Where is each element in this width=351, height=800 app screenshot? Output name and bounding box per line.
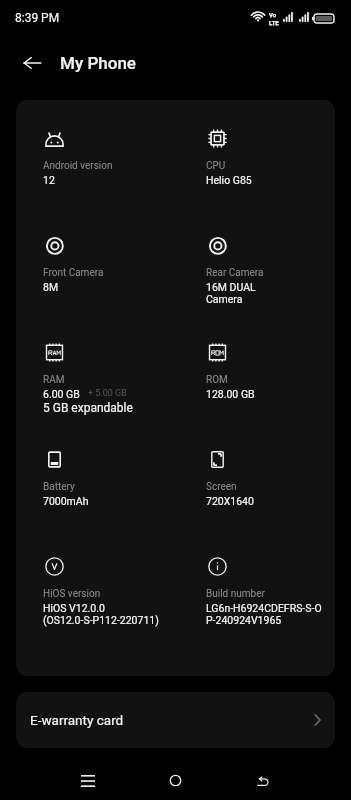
button[interactable]: Battery <box>43 450 206 507</box>
staticText: + 5.00 GB <box>88 388 127 399</box>
button[interactable]: CPU <box>206 129 333 186</box>
staticText: Helio G85 <box>206 174 252 186</box>
button[interactable]: Recent apps <box>44 760 131 800</box>
staticText: LTE <box>269 19 279 26</box>
button[interactable]: Build number <box>206 557 333 626</box>
staticText: My Phone <box>60 53 136 73</box>
staticText: 16M DUAL Camera <box>206 281 256 305</box>
staticText: E-warranty card <box>30 712 124 728</box>
button[interactable]: Home <box>131 760 219 800</box>
staticText: CPU <box>206 160 226 172</box>
staticText: 128.00 GB <box>206 388 255 400</box>
staticText: Battery <box>43 481 75 493</box>
staticText: Front Camera <box>43 267 104 279</box>
button[interactable]: Android version <box>43 129 206 186</box>
staticText: Build number <box>206 588 265 600</box>
button[interactable]: RAM <box>43 343 206 415</box>
button[interactable]: Front Camera <box>43 236 206 293</box>
button[interactable]: HiOS version <box>43 557 206 626</box>
button[interactable]: Rear Camera <box>206 236 333 305</box>
staticText: 720X1640 <box>206 495 254 507</box>
button[interactable]: Back <box>11 42 53 84</box>
button[interactable]: Back <box>219 760 307 800</box>
staticText: HiOS V12.0.0 (OS12.0-S-P112-220711) <box>43 602 159 626</box>
button[interactable]: E-warranty card <box>16 692 335 748</box>
staticText: 7000mAh <box>43 495 89 507</box>
staticText: Android version <box>43 160 113 172</box>
staticText: HiOS version <box>43 588 101 600</box>
staticText: 6.00 GB <box>43 388 80 400</box>
staticText: RAM <box>43 374 65 386</box>
staticText: ROM <box>206 374 228 386</box>
staticText: 12 <box>43 174 55 186</box>
staticText: Vo <box>269 11 277 18</box>
staticText: 8M <box>43 281 59 293</box>
staticText: LG6n-H6924CDEFRS-S-O P-240924V1965 <box>206 602 322 626</box>
button[interactable]: ROM <box>206 343 333 400</box>
staticText: 8:39 PM <box>15 11 60 25</box>
staticText: Screen <box>206 481 237 493</box>
button[interactable]: Screen <box>206 450 333 507</box>
staticText: Rear Camera <box>206 267 264 279</box>
staticText: 5 GB expandable <box>43 401 133 415</box>
